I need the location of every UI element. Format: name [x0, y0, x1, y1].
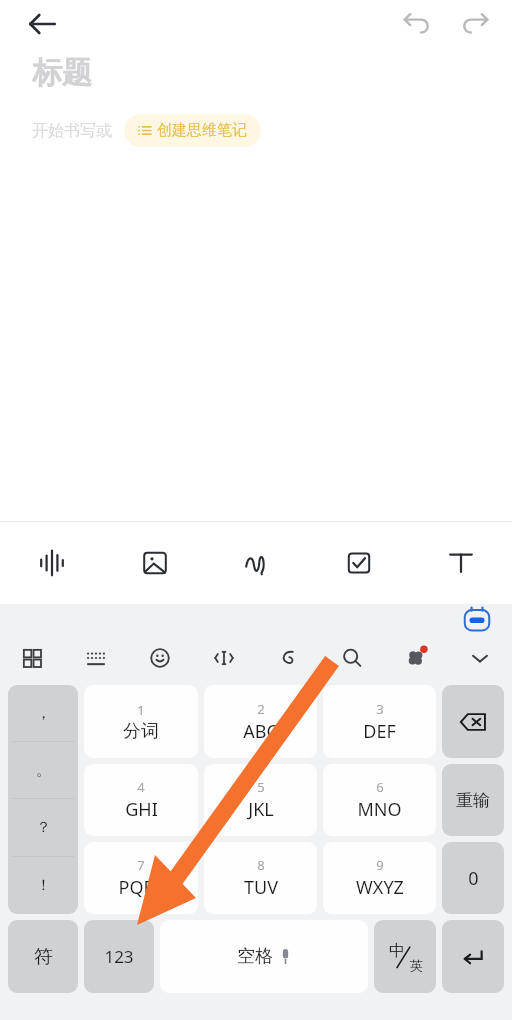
- button[interactable]: 符: [8, 920, 78, 993]
- button[interactable]: AI assistant: [460, 607, 494, 633]
- staticText: 。: [36, 761, 51, 780]
- button[interactable]: Panels: [0, 636, 64, 680]
- staticText: 2: [257, 700, 265, 718]
- button[interactable]: Audio: [0, 522, 103, 604]
- button[interactable]: 重输: [442, 764, 504, 836]
- staticText: 3: [376, 700, 384, 718]
- staticText: GHI: [125, 797, 158, 822]
- button[interactable]: 8: [204, 842, 317, 914]
- staticText: 123: [104, 945, 134, 968]
- button[interactable]: Redo: [458, 6, 492, 40]
- staticText: 0: [468, 866, 479, 891]
- button[interactable]: 6: [323, 764, 436, 836]
- staticText: 1: [137, 701, 145, 719]
- button[interactable]: 123: [84, 920, 154, 993]
- staticText: 创建思维笔记: [157, 121, 247, 140]
- staticText: 开始书写或: [32, 121, 112, 141]
- button[interactable]: Handwriting: [206, 522, 308, 604]
- staticText: WXYZ: [356, 875, 404, 900]
- button[interactable]: 。: [8, 742, 78, 798]
- staticText: PQRS: [118, 875, 165, 900]
- button[interactable]: Text style: [410, 522, 512, 604]
- staticText: 分词: [123, 720, 159, 743]
- button[interactable]: Clipboard: [256, 636, 320, 680]
- staticText: 中: [389, 941, 405, 961]
- staticText: TUV: [244, 875, 278, 900]
- button[interactable]: Checklist: [308, 522, 410, 604]
- button[interactable]: Back: [26, 6, 62, 42]
- button[interactable]: Backspace: [442, 685, 504, 758]
- button[interactable]: 3: [323, 685, 436, 758]
- staticText: JKL: [248, 797, 274, 822]
- staticText: ABC: [243, 719, 278, 744]
- staticText: 空格: [237, 945, 273, 968]
- staticText: 6: [376, 778, 384, 796]
- staticText: 5: [257, 778, 265, 796]
- button[interactable]: Enter: [442, 920, 504, 993]
- button[interactable]: 0: [442, 842, 504, 914]
- button[interactable]: 创建思维笔记: [124, 114, 261, 147]
- staticText: 4: [137, 778, 145, 796]
- staticText: 英: [410, 957, 423, 973]
- button[interactable]: 5: [204, 764, 317, 836]
- button[interactable]: 7: [84, 842, 198, 914]
- button[interactable]: 4: [84, 764, 198, 836]
- button[interactable]: Search: [320, 636, 384, 680]
- button[interactable]: Hide keyboard: [448, 636, 512, 680]
- staticText: ！: [36, 876, 51, 895]
- staticText: ？: [36, 818, 51, 837]
- staticText: 7: [137, 856, 145, 874]
- staticText: 标题: [32, 54, 92, 92]
- button[interactable]: ！: [8, 857, 78, 914]
- button[interactable]: 空格: [160, 920, 368, 993]
- button[interactable]: 中: [374, 920, 436, 993]
- button[interactable]: ？: [8, 799, 78, 856]
- button[interactable]: 2: [204, 685, 317, 758]
- button[interactable]: Image: [103, 522, 206, 604]
- staticText: 符: [34, 945, 53, 969]
- staticText: DEF: [363, 719, 396, 744]
- button[interactable]: 1: [84, 685, 198, 758]
- button[interactable]: Cursor: [192, 636, 256, 680]
- button[interactable]: 9: [323, 842, 436, 914]
- staticText: 重输: [456, 790, 490, 811]
- button[interactable]: Stickers: [384, 636, 448, 680]
- staticText: MNO: [357, 797, 402, 822]
- button[interactable]: Keyboard layout: [64, 636, 128, 680]
- staticText: 8: [257, 856, 265, 874]
- staticText: ，: [36, 704, 51, 723]
- button[interactable]: Emoji: [128, 636, 192, 680]
- button[interactable]: ，: [8, 685, 78, 741]
- staticText: 9: [376, 856, 384, 874]
- button[interactable]: Undo: [400, 6, 434, 40]
